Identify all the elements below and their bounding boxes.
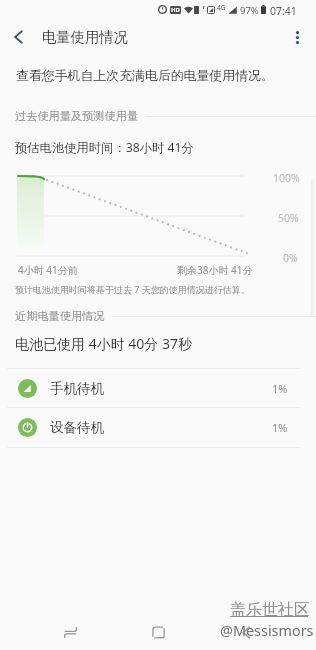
staticText: 0% — [283, 251, 298, 265]
staticText: 剩余38小时 41分 — [177, 263, 253, 277]
button[interactable]: 手机待机 — [0, 368, 316, 408]
staticText: 查看您手机自上次充满电后的电量使用情况。 — [16, 68, 274, 84]
staticText: @Messismors — [220, 621, 314, 641]
staticText: 07:41 — [270, 4, 297, 15]
staticText: 电量使用情况 — [42, 28, 128, 46]
button[interactable]: 设备待机 — [0, 407, 316, 447]
button[interactable]: Recent apps — [26, 611, 114, 650]
staticText: 电池已使用 4小时 40分 37秒 — [15, 334, 192, 353]
staticText: 1% — [272, 420, 288, 435]
staticText: 预估电池使用时间：38小时 41分 — [15, 139, 194, 156]
button[interactable]: Navigate up — [0, 18, 38, 56]
staticText: 设备待机 — [50, 419, 104, 436]
staticText: 近期电量使用情况 — [15, 309, 105, 323]
button[interactable]: Home — [114, 611, 202, 650]
staticText: HD — [171, 6, 180, 14]
staticText: 手机待机 — [50, 380, 104, 397]
staticText: 盖乐世社区 — [230, 600, 310, 620]
staticText: 1% — [272, 381, 288, 396]
staticText: 4G — [217, 3, 226, 12]
staticText: 100% — [273, 171, 300, 185]
staticText: 97% — [240, 4, 259, 15]
staticText: 预计电池使用时间将基于过去 7 天您的使用情况进行估算。 — [15, 283, 250, 295]
staticText: 50% — [278, 211, 299, 225]
button[interactable]: Back — [202, 611, 290, 650]
staticText: 过去使用量及预测使用量 — [15, 109, 139, 123]
button[interactable]: More options — [278, 18, 316, 56]
staticText: 4小时 41分前 — [18, 263, 78, 277]
